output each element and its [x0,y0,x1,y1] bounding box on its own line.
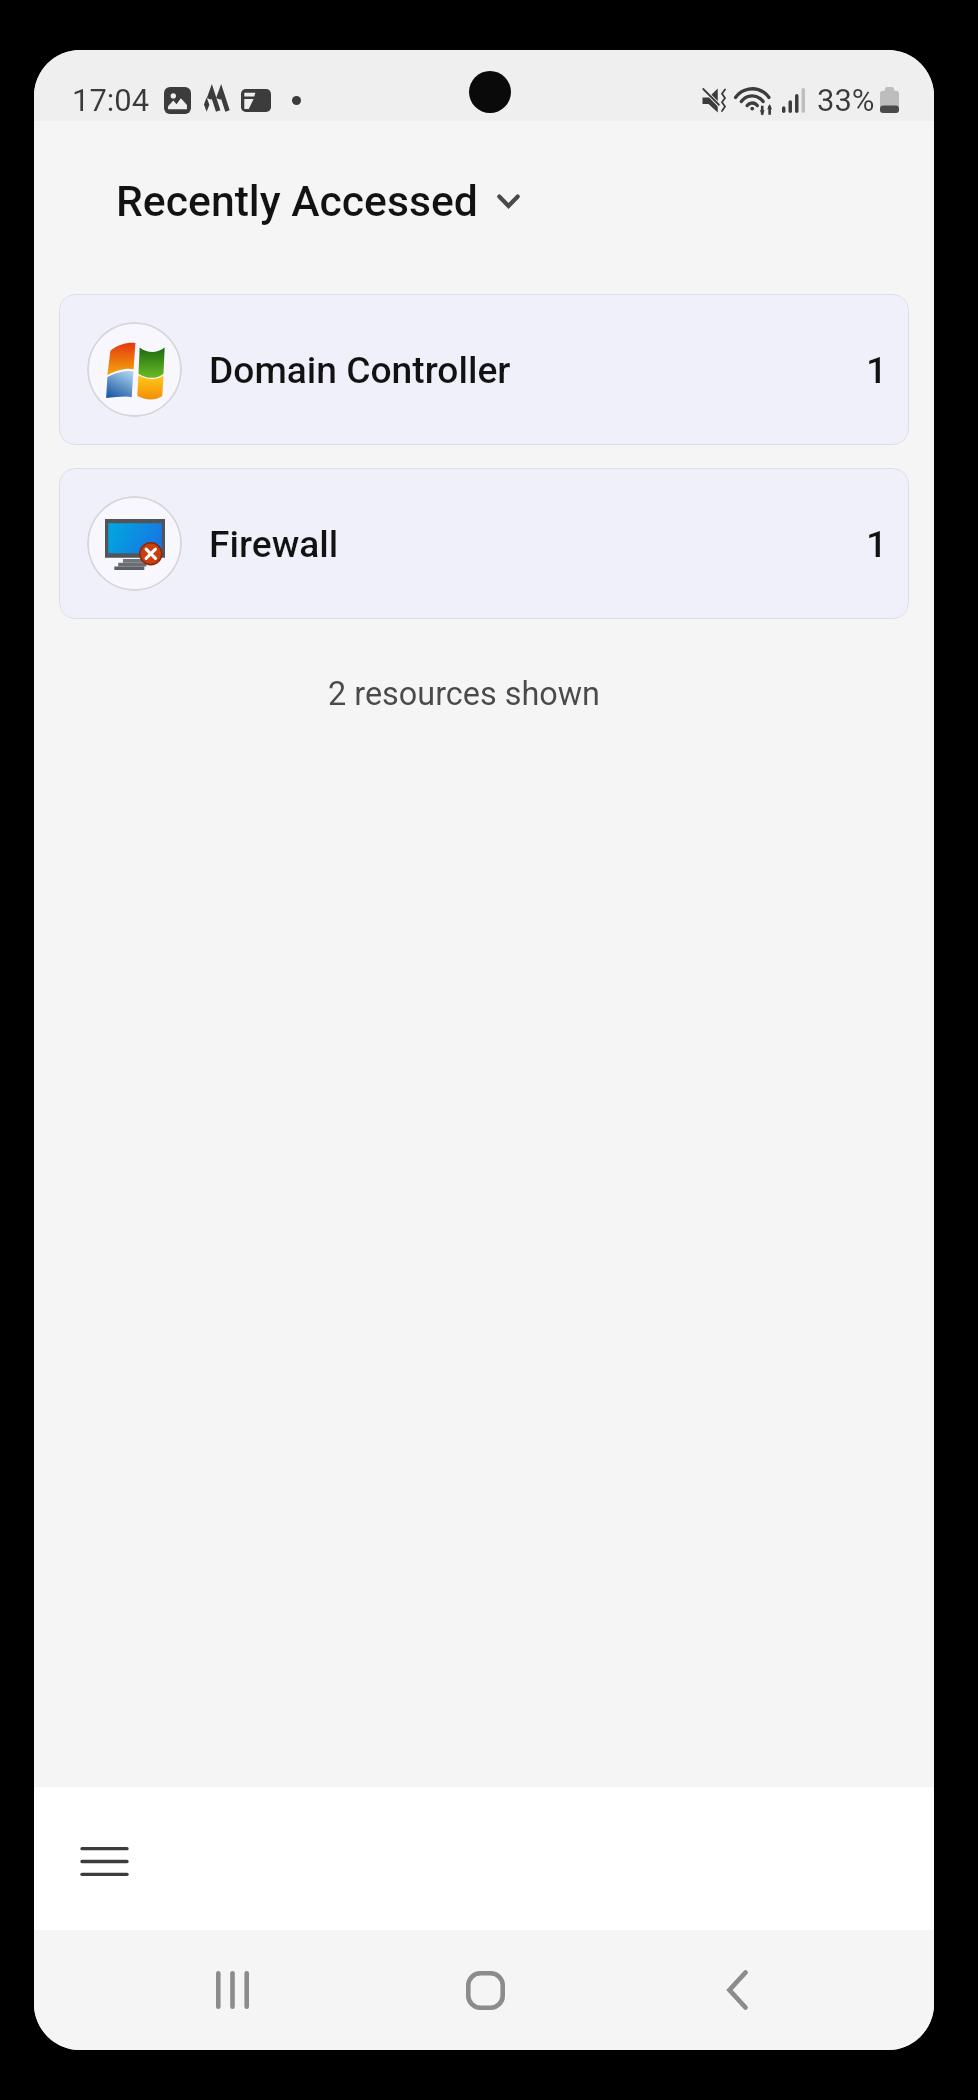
staticText: Firewall [209,522,339,566]
staticText: 2 resources shown [328,675,600,713]
staticText: 1 [866,348,888,392]
button[interactable]: Back [611,1930,863,2050]
button[interactable]: Home [359,1930,611,2050]
staticText: 33% [817,82,875,118]
button[interactable]: Recent apps [106,1930,359,2050]
staticText: Recently Accessed [116,176,478,226]
staticText: 1 [866,522,888,566]
button[interactable]: Recently Accessed [34,121,934,281]
button[interactable]: Domain Controller [59,294,909,445]
staticText: Domain Controller [209,348,511,392]
staticText: 17:04 [72,82,150,118]
button[interactable]: Menu [59,1816,149,1906]
button[interactable]: Firewall [59,468,909,619]
